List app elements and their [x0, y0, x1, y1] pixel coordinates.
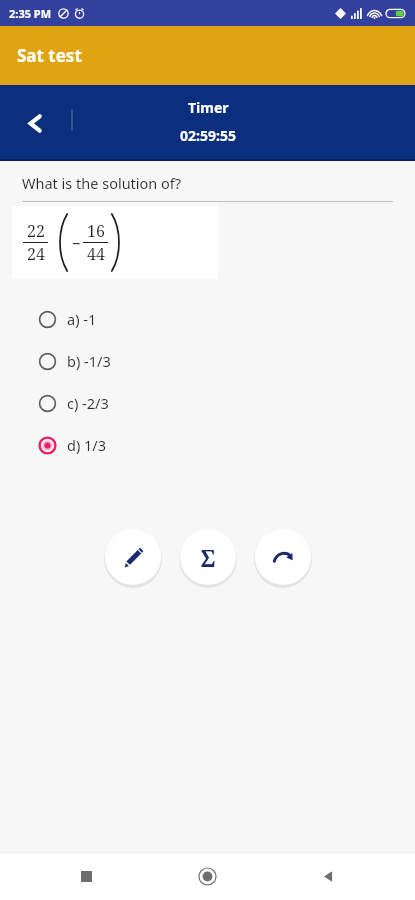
button[interactable]: c) -2/3	[0, 382, 415, 424]
button[interactable]: Formula	[180, 529, 236, 585]
staticText: 2:35 PM	[9, 6, 52, 21]
staticText: Σ	[200, 542, 216, 573]
button[interactable]: Draw	[105, 529, 161, 585]
button[interactable]: Back	[268, 852, 389, 900]
button[interactable]: Recents	[26, 852, 147, 900]
button[interactable]: Home	[147, 852, 268, 900]
staticText: Sat test	[17, 44, 82, 67]
staticText: 02:59:55	[180, 126, 236, 145]
staticText: −	[72, 233, 81, 253]
button[interactable]: d) 1/3	[0, 424, 415, 466]
button[interactable]: Back	[14, 102, 56, 144]
button[interactable]: a) -1	[0, 298, 415, 340]
staticText: 24	[27, 243, 45, 265]
staticText: d) 1/3	[67, 435, 107, 455]
button[interactable]: b) -1/3	[0, 340, 415, 382]
staticText: Timer	[188, 98, 229, 117]
staticText: b) -1/3	[67, 351, 111, 371]
button[interactable]: Next	[255, 529, 311, 585]
staticText: 16	[87, 220, 105, 242]
staticText: 22	[27, 220, 45, 242]
staticText: 44	[87, 243, 105, 265]
staticText: a) -1	[67, 309, 97, 329]
staticText: c) -2/3	[67, 393, 109, 413]
staticText: What is the solution of?	[22, 173, 182, 193]
